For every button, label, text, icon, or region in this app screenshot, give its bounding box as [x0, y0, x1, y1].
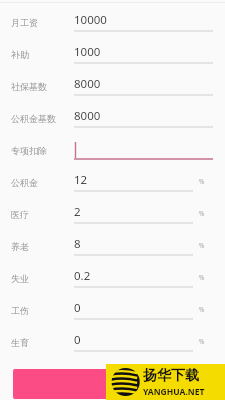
staticText: 8000	[74, 108, 101, 124]
staticText: 10000	[74, 12, 107, 28]
button[interactable]	[13, 369, 213, 399]
staticText: %	[199, 177, 205, 186]
staticText: 1000	[74, 44, 101, 60]
staticText: %	[199, 241, 205, 250]
button[interactable]: 工伤	[0, 295, 225, 325]
button[interactable]: 专项扣除	[0, 135, 225, 165]
staticText: 0	[74, 332, 81, 348]
staticText: 2	[74, 204, 81, 220]
staticText: 公积金基数	[11, 113, 56, 124]
button[interactable]: 月工资	[0, 7, 225, 37]
staticText: 月工资	[11, 17, 38, 28]
staticText: 补助	[11, 49, 29, 60]
staticText: 生育	[11, 337, 29, 348]
button[interactable]: 社保基数	[0, 71, 225, 101]
staticText: YANGHUA.NET	[143, 386, 205, 398]
staticText: 养老	[11, 241, 29, 252]
button[interactable]: 公积金	[0, 167, 225, 197]
staticText: 8000	[74, 76, 101, 92]
staticText: %	[199, 305, 205, 314]
staticText: 12	[74, 172, 88, 188]
button[interactable]: 医疗	[0, 199, 225, 229]
staticText: 失业	[11, 273, 29, 284]
button[interactable]: 失业	[0, 263, 225, 293]
staticText: 8	[74, 236, 81, 252]
staticText: 医疗	[11, 209, 29, 220]
button[interactable]: 养老	[0, 231, 225, 261]
button[interactable]: 生育	[0, 327, 225, 357]
button[interactable]: 补助	[0, 39, 225, 69]
staticText: 扬华下载	[143, 367, 199, 385]
staticText: %	[199, 209, 205, 218]
staticText: %	[199, 337, 205, 346]
staticText: 社保基数	[11, 81, 47, 92]
staticText: %	[199, 273, 205, 282]
staticText: 工伤	[11, 305, 29, 316]
staticText: 公积金	[11, 177, 38, 188]
staticText: 0	[74, 300, 81, 316]
staticText: 0.2	[74, 268, 91, 284]
button[interactable]: 公积金基数	[0, 103, 225, 133]
staticText: 专项扣除	[11, 145, 47, 156]
